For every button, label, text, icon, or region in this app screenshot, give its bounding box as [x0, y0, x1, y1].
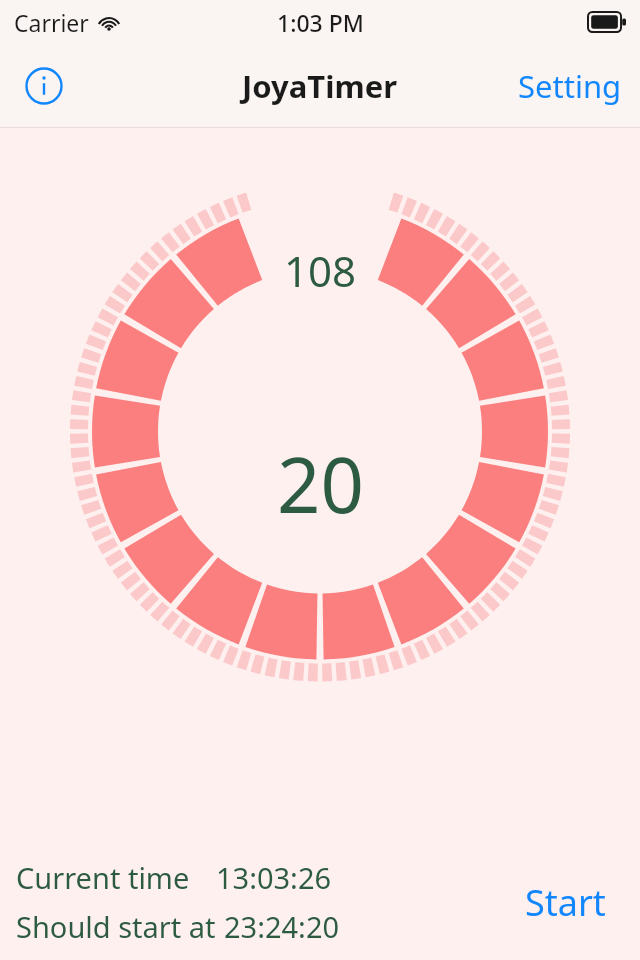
staticText: 108 — [284, 242, 357, 299]
staticText: Should start at — [16, 907, 216, 946]
button[interactable]: Setting — [500, 55, 640, 117]
staticText: 20 — [277, 432, 364, 536]
staticText: 1:03 PM — [277, 7, 364, 38]
staticText: Current time — [16, 858, 190, 897]
button[interactable]: Start — [513, 868, 618, 937]
staticText: Setting — [518, 65, 622, 107]
button[interactable]: Info — [14, 56, 74, 116]
staticText: Start — [525, 878, 606, 927]
staticText: JoyaTimer — [242, 65, 398, 107]
staticText: 13:03:26 — [216, 858, 332, 897]
staticText: Carrier — [14, 7, 89, 38]
staticText: 23:24:20 — [224, 907, 340, 946]
